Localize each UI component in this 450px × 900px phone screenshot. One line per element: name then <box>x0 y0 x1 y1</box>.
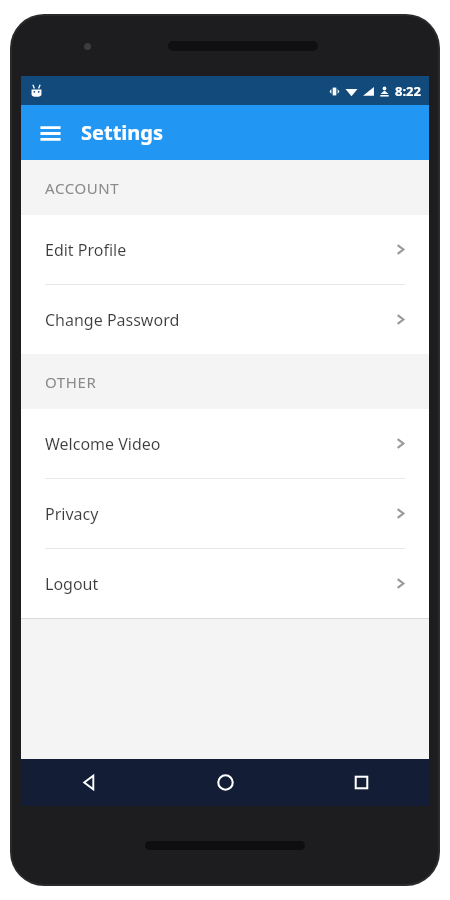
button[interactable]: Recent apps <box>293 759 429 806</box>
button[interactable]: Logout <box>21 549 429 618</box>
button[interactable]: Open navigation menu <box>33 116 67 150</box>
button[interactable]: Welcome Video <box>21 409 429 478</box>
button[interactable]: Privacy <box>21 479 429 548</box>
staticText: 8:22 <box>395 82 421 100</box>
button[interactable]: Edit Profile <box>21 215 429 284</box>
staticText: Privacy <box>45 503 394 525</box>
staticText: ACCOUNT <box>45 178 120 198</box>
staticText: Welcome Video <box>45 433 394 455</box>
button[interactable]: Home <box>157 759 293 806</box>
button[interactable]: Back <box>21 759 157 806</box>
staticText: Edit Profile <box>45 239 394 261</box>
staticText: Settings <box>81 119 163 146</box>
button[interactable]: Change Password <box>21 285 429 354</box>
staticText: Change Password <box>45 309 394 331</box>
staticText: Logout <box>45 573 394 595</box>
staticText: OTHER <box>45 372 97 392</box>
